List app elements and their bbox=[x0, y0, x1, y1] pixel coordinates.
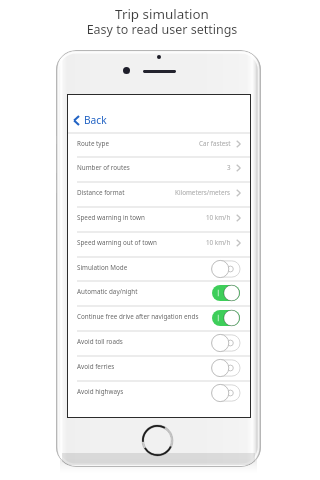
staticText: Avoid highways bbox=[77, 387, 124, 396]
staticText: Number of routes bbox=[77, 163, 130, 172]
button[interactable]: Number of routes bbox=[68, 156, 250, 181]
button[interactable]: Avoid ferries bbox=[68, 355, 250, 380]
button[interactable]: Avoid toll roads bbox=[68, 330, 250, 355]
button[interactable]: Simulation Mode bbox=[68, 256, 250, 281]
button[interactable]: Distance format bbox=[68, 181, 250, 206]
staticText: Route type bbox=[77, 139, 109, 148]
staticText: Simulation Mode bbox=[77, 263, 128, 272]
staticText: Automatic day/night bbox=[77, 287, 138, 296]
staticText: Easy to read user settings bbox=[2, 21, 320, 38]
button[interactable]: Automatic day/night bbox=[68, 280, 250, 305]
button[interactable]: Speed warning in town bbox=[68, 206, 250, 231]
button[interactable]: Back bbox=[73, 113, 107, 127]
button[interactable]: Switch on bbox=[212, 284, 240, 302]
staticText: Avoid ferries bbox=[77, 362, 115, 371]
staticText: Trip simulation bbox=[2, 5, 320, 23]
button[interactable]: Avoid highways bbox=[68, 380, 250, 405]
staticText: Back bbox=[84, 113, 107, 127]
button[interactable]: Switch off bbox=[212, 359, 240, 377]
button[interactable]: Switch off bbox=[212, 260, 240, 278]
staticText: Distance format bbox=[77, 188, 125, 197]
button[interactable]: Switch off bbox=[212, 334, 240, 352]
staticText: Continue free drive after navigation end… bbox=[77, 312, 199, 321]
staticText: Kilometers/meters bbox=[175, 188, 231, 197]
button[interactable]: Speed warning out of town bbox=[68, 231, 250, 256]
staticText: Car fastest bbox=[199, 139, 231, 148]
staticText: 10 km/h bbox=[206, 238, 231, 247]
button[interactable]: Switch off bbox=[212, 384, 240, 402]
button[interactable]: Switch on bbox=[212, 309, 240, 327]
staticText: Speed warning out of town bbox=[77, 238, 157, 247]
staticText: Speed warning in town bbox=[77, 213, 145, 222]
button[interactable]: Home bbox=[142, 425, 173, 456]
staticText: 3 bbox=[227, 163, 231, 172]
button[interactable]: Route type bbox=[68, 132, 250, 157]
button[interactable]: Continue free drive after navigation end… bbox=[68, 305, 250, 330]
staticText: 10 km/h bbox=[206, 213, 231, 222]
staticText: Avoid toll roads bbox=[77, 337, 123, 346]
